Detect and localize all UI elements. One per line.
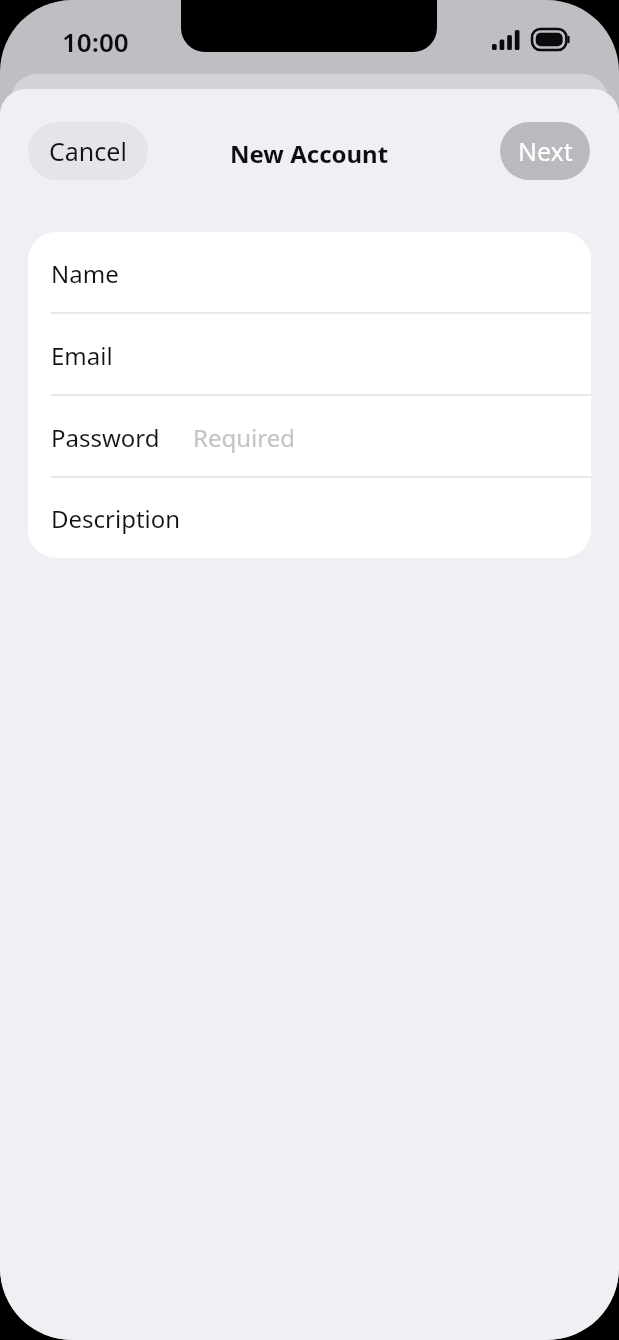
button[interactable]: Name	[28, 232, 591, 314]
staticText: Description	[51, 502, 181, 535]
staticText: Next	[518, 134, 573, 168]
button[interactable]: Email	[28, 314, 591, 396]
staticText: 10:00	[62, 24, 129, 59]
button[interactable]: Cancel	[28, 122, 148, 180]
button[interactable]: Password	[28, 396, 591, 478]
staticText: Required	[193, 421, 295, 454]
button[interactable]: Next	[500, 122, 590, 180]
other: Signal and battery status	[492, 29, 572, 50]
staticText: Cancel	[49, 134, 127, 168]
staticText: Email	[51, 339, 113, 372]
staticText: Password	[51, 421, 160, 454]
staticText: Name	[51, 257, 119, 290]
staticText: New Account	[230, 137, 389, 170]
button[interactable]: Description	[28, 478, 591, 558]
